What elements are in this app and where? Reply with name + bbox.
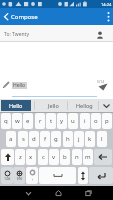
button[interactable]: v [49, 149, 59, 165]
button[interactable]: i [80, 113, 90, 129]
button[interactable] [77, 186, 99, 200]
button[interactable]: EN [13, 167, 25, 184]
button[interactable] [17, 186, 39, 200]
button[interactable]: a [6, 131, 16, 147]
staticText: Hello [9, 102, 23, 109]
staticText: f [44, 135, 47, 143]
staticText: z [19, 153, 22, 161]
button[interactable] [98, 83, 108, 91]
staticText: 5/14 [97, 79, 105, 84]
staticText: Jello [48, 102, 59, 109]
button[interactable]: z [15, 149, 25, 165]
button[interactable]: l [97, 131, 107, 147]
button[interactable]: b [60, 149, 70, 165]
button[interactable]: n [72, 149, 82, 165]
button[interactable]: To: Twenty [0, 25, 113, 42]
button[interactable]: u [68, 113, 78, 129]
button[interactable] [94, 149, 112, 165]
button[interactable]: y [57, 113, 67, 129]
staticText: m [85, 153, 91, 161]
button[interactable] [89, 167, 113, 184]
staticText: q [4, 117, 8, 125]
staticText: j [78, 135, 80, 143]
staticText: w [15, 117, 20, 125]
button[interactable]: f [40, 131, 50, 147]
staticText: n [75, 153, 79, 161]
button[interactable]: t [46, 113, 56, 129]
staticText: d [32, 135, 36, 143]
staticText: a [9, 135, 13, 143]
button[interactable]: p [102, 113, 112, 129]
button[interactable] [78, 167, 88, 184]
staticText: u [71, 117, 75, 125]
button[interactable] [39, 167, 76, 184]
button[interactable]: Compose [0, 8, 113, 25]
button[interactable]: 12# [1, 167, 13, 184]
button[interactable]: s [18, 131, 28, 147]
button[interactable]: e [23, 113, 33, 129]
button[interactable]: Hellog [70, 99, 98, 112]
staticText: r [39, 117, 42, 125]
button[interactable]: o [91, 113, 101, 129]
staticText: i [84, 117, 86, 125]
staticText: x [29, 153, 33, 161]
button[interactable]: c [38, 149, 48, 165]
staticText: s [22, 135, 25, 143]
staticText: e [26, 117, 30, 125]
button[interactable] [1, 149, 14, 165]
staticText: 14:24 [101, 2, 112, 7]
button[interactable]: , [26, 167, 38, 184]
staticText: o [94, 117, 98, 125]
button[interactable]: k [85, 131, 95, 147]
staticText: c [42, 153, 45, 161]
staticText: t [50, 117, 53, 125]
staticText: k [88, 135, 92, 143]
staticText: g [54, 135, 58, 143]
button[interactable]: r [35, 113, 45, 129]
button[interactable]: g [51, 131, 61, 147]
button[interactable]: h [63, 131, 73, 147]
button[interactable]: j [74, 131, 84, 147]
button[interactable]: Jello [40, 99, 66, 112]
button[interactable]: Hello [1, 100, 31, 111]
button[interactable]: x [26, 149, 36, 165]
button[interactable]: w [12, 113, 22, 129]
staticText: b [63, 153, 67, 161]
staticText: l [101, 135, 103, 143]
staticText: To: Twenty [4, 31, 29, 38]
staticText: Hello [13, 82, 26, 89]
staticText: , [32, 175, 34, 181]
button[interactable] [100, 99, 113, 112]
button[interactable] [47, 186, 69, 200]
staticText: y [60, 117, 64, 125]
staticText: p [105, 117, 109, 125]
button[interactable] [95, 30, 105, 40]
staticText: EN [17, 176, 22, 181]
button[interactable] [104, 8, 113, 25]
button[interactable]: d [29, 131, 39, 147]
button[interactable]: q [1, 113, 11, 129]
staticText: 12# [4, 176, 11, 181]
staticText: Compose [11, 13, 38, 21]
staticText: v [52, 153, 56, 161]
button[interactable]: m [83, 149, 93, 165]
staticText: Hellog [76, 102, 93, 109]
staticText: h [66, 135, 70, 143]
